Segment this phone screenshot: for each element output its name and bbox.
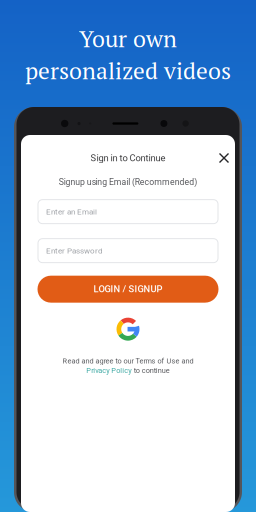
staticText: Privacy Policy [86, 366, 131, 375]
staticText: Your own [79, 23, 177, 54]
button[interactable]: Enter an Email [38, 200, 218, 224]
staticText: Enter an Email [46, 207, 97, 216]
staticText: Sign in to Continue [90, 152, 165, 163]
button[interactable]: Enter Password [38, 239, 218, 263]
button[interactable]: Sign in with Google [111, 313, 144, 346]
staticText: LOGIN / SIGNUP [93, 284, 162, 295]
button[interactable]: Privacy Policy [86, 366, 131, 375]
staticText: Read and agree to our Terms of Use and [62, 357, 193, 365]
staticText: Signup using Email (Recommended) [59, 177, 197, 187]
staticText: Enter Password [46, 246, 103, 255]
staticText: personalized videos [25, 55, 231, 86]
button[interactable]: Close [213, 147, 235, 169]
button[interactable]: LOGIN / SIGNUP [37, 276, 218, 303]
staticText: to continue [134, 366, 170, 375]
